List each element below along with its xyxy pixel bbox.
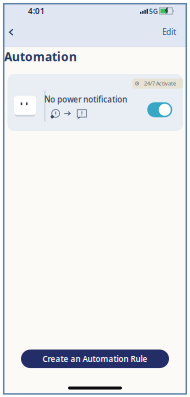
staticText: Create an Automation Rule <box>42 353 147 364</box>
staticText: Edit <box>162 27 176 37</box>
staticText: 5G <box>149 7 158 16</box>
staticText: 24/7 Activate <box>144 80 176 87</box>
button[interactable]: Create an Automation Rule <box>21 350 169 368</box>
staticText: No power notification <box>44 94 127 105</box>
button[interactable]: 24/7 Activate <box>7 74 183 131</box>
button[interactable]: Back <box>7 25 17 37</box>
button[interactable]: No power notification on <box>147 102 172 117</box>
staticText: Automation <box>4 49 77 64</box>
button[interactable]: Edit <box>162 27 176 37</box>
staticText: 4:01 <box>28 6 45 16</box>
